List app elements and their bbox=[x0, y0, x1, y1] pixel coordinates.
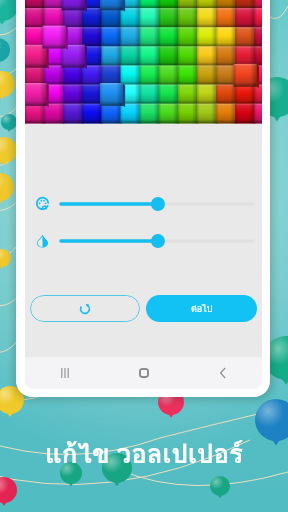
staticText: ต่อไป bbox=[191, 302, 213, 316]
staticText: แก้ไข วอลเปเปอร์ bbox=[45, 433, 243, 474]
button[interactable]: ต่อไป bbox=[146, 295, 257, 322]
button[interactable]: Home bbox=[104, 357, 183, 389]
button[interactable]: Reset wallpaper bbox=[30, 295, 140, 322]
button[interactable]: Opacity bbox=[34, 229, 256, 253]
button[interactable]: Color bbox=[34, 192, 256, 216]
button[interactable]: Back bbox=[183, 357, 262, 389]
button[interactable]: Recent apps bbox=[25, 357, 104, 389]
